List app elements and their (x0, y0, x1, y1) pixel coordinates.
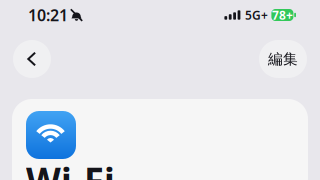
staticText: 5G+ (245, 7, 268, 23)
button[interactable]: 編集 (259, 40, 307, 78)
staticText: 編集 (268, 50, 298, 68)
button[interactable]: Wi-Fi (12, 99, 308, 180)
button[interactable]: Back (13, 40, 51, 78)
staticText: 10:21 (28, 4, 68, 26)
staticText: Wi-Fi (26, 156, 115, 180)
staticText: 78+ (272, 7, 293, 23)
